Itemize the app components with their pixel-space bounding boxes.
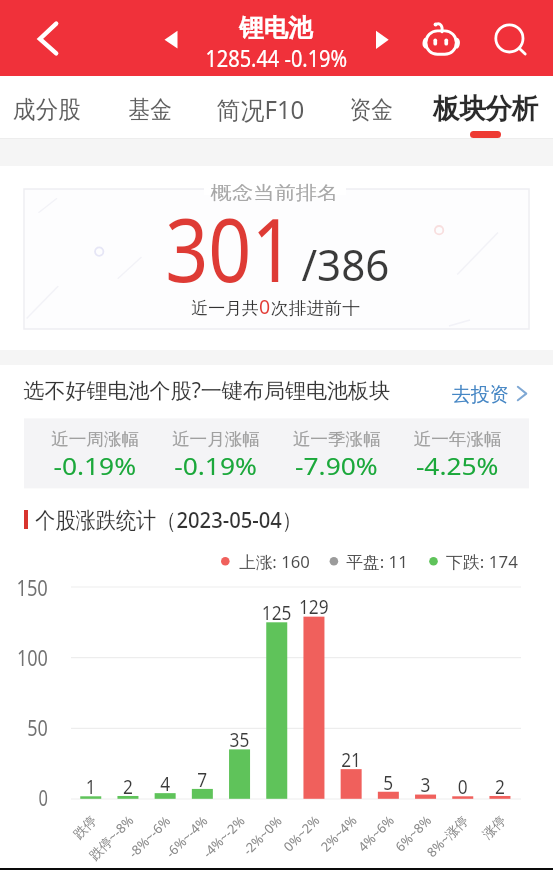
button[interactable]: 简况F10 [209, 82, 313, 126]
button[interactable]: Next sector [366, 20, 406, 60]
button[interactable]: 资金 [319, 82, 423, 126]
button[interactable]: 板块分析 [434, 82, 538, 126]
button[interactable]: 成分股 [0, 82, 99, 126]
button[interactable]: 基金 [98, 82, 202, 126]
button[interactable]: Previous sector [152, 20, 192, 60]
button[interactable]: AI assistant [418, 18, 464, 64]
button[interactable]: Search [488, 16, 534, 62]
button[interactable]: Back [22, 14, 72, 64]
button[interactable]: 去投资 [470, 375, 548, 409]
